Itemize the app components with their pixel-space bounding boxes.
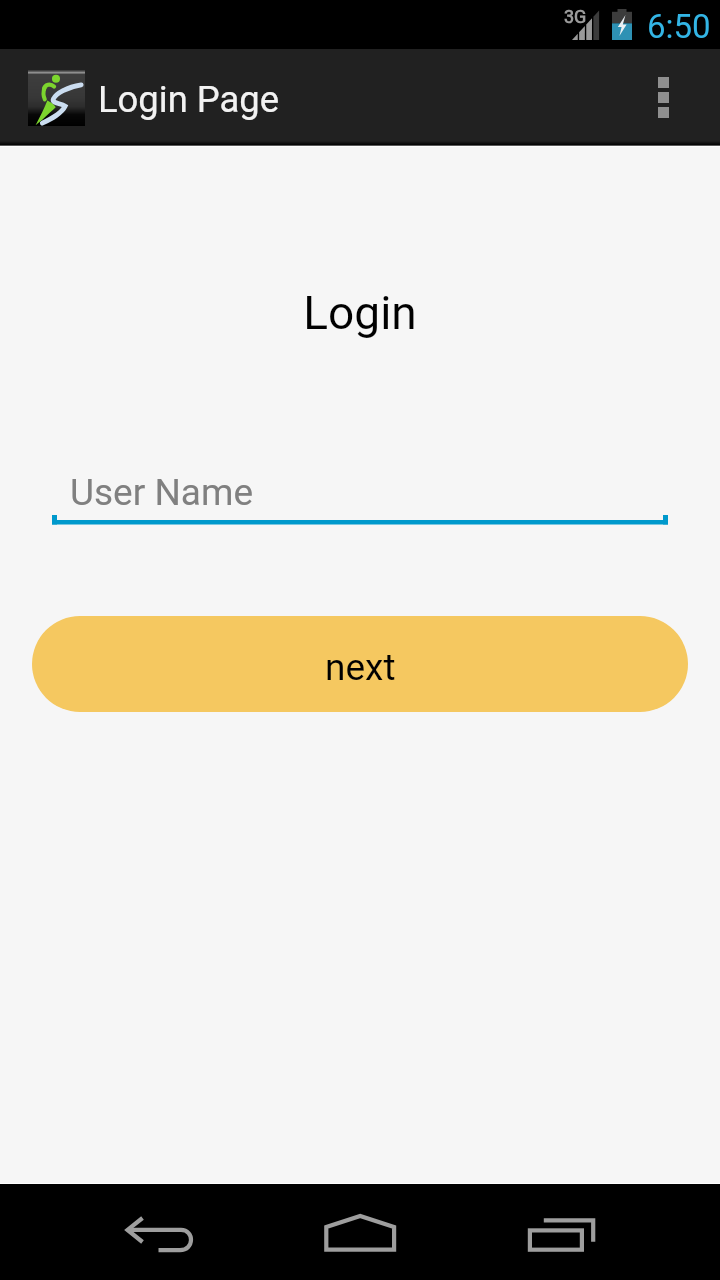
staticText: User Name bbox=[70, 471, 254, 514]
button[interactable]: Recent apps bbox=[466, 1184, 658, 1280]
button[interactable]: More options bbox=[634, 49, 720, 147]
staticText: 3G bbox=[564, 6, 587, 27]
button[interactable]: next bbox=[32, 616, 688, 712]
staticText: Login Page bbox=[98, 78, 280, 121]
button[interactable]: User Name bbox=[52, 462, 668, 530]
button[interactable]: Back bbox=[64, 1184, 256, 1280]
button[interactable]: Home bbox=[264, 1184, 456, 1280]
staticText: Login bbox=[0, 286, 720, 340]
staticText: next bbox=[325, 646, 396, 689]
staticText: 6:50 bbox=[647, 7, 711, 46]
